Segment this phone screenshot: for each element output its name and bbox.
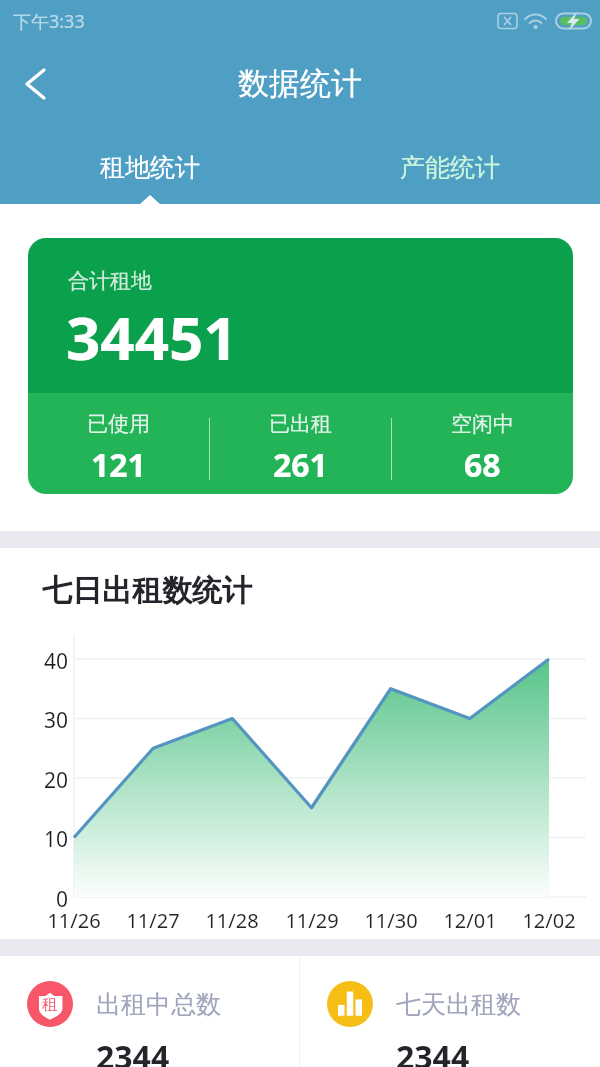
staticText: 34451	[66, 296, 238, 378]
staticText: 租地统计	[100, 152, 200, 183]
staticText: 空闲中	[451, 411, 514, 437]
staticText: 租	[42, 995, 58, 1015]
button[interactable]: 产能统计	[300, 152, 600, 216]
staticText: 261	[273, 443, 328, 487]
staticText: 40	[0, 647, 68, 676]
staticText: 数据统计	[0, 64, 600, 103]
staticText: 20	[0, 766, 68, 795]
staticText: 0	[0, 885, 68, 914]
staticText: 下午3:33	[13, 9, 85, 34]
button[interactable]: 租地统计	[0, 152, 300, 216]
staticText: 已出租	[269, 411, 332, 437]
staticText: 合计租地	[68, 268, 152, 294]
staticText: 11/29	[272, 907, 352, 934]
staticText: 11/28	[192, 907, 272, 934]
staticText: 12/01	[430, 907, 510, 934]
staticText: 已使用	[87, 411, 150, 437]
staticText: 出租中总数	[96, 989, 221, 1020]
staticText: 68	[464, 443, 501, 487]
button[interactable]: 七天出租数	[300, 956, 600, 1067]
staticText: 121	[91, 443, 146, 487]
staticText: 12/02	[509, 907, 589, 934]
staticText: 11/27	[113, 907, 193, 934]
button[interactable]: Back	[8, 60, 56, 108]
staticText: 10	[0, 825, 68, 854]
staticText: 2344	[396, 1035, 470, 1067]
staticText: 产能统计	[400, 152, 500, 183]
staticText: 11/26	[34, 907, 114, 934]
button[interactable]: 租	[0, 956, 299, 1067]
staticText: 七日出租数统计	[42, 572, 252, 610]
staticText: 七天出租数	[396, 989, 521, 1020]
button[interactable]: 合计租地	[28, 238, 573, 494]
staticText: 2344	[96, 1035, 170, 1067]
staticText: 30	[0, 706, 68, 735]
staticText: 11/30	[351, 907, 431, 934]
